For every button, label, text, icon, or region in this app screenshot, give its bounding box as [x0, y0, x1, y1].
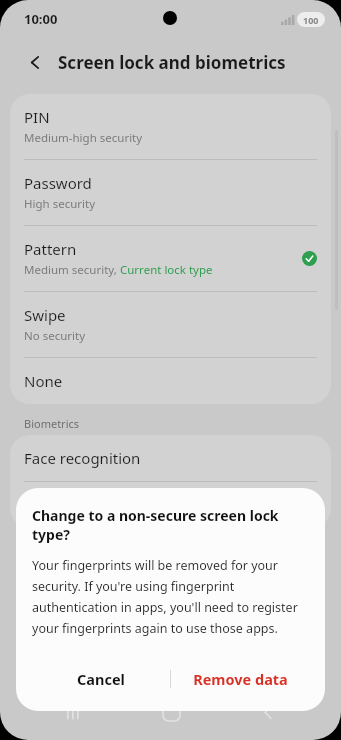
button[interactable]: Pattern [10, 226, 331, 291]
staticText: Fingerprints [24, 495, 110, 515]
staticText: Current lock type [120, 262, 213, 278]
staticText: 10:00 [24, 10, 58, 28]
button[interactable]: Password [10, 160, 331, 225]
button[interactable]: PIN [10, 94, 331, 159]
button[interactable]: Fingerprints [10, 482, 331, 528]
staticText: Your fingerprints will be removed for yo… [32, 557, 309, 637]
button[interactable]: Back [20, 47, 50, 77]
staticText: Remove data [193, 669, 288, 689]
staticText: Pattern [24, 239, 77, 259]
staticText: Biometrics [24, 416, 80, 431]
staticText: Medium-high security [24, 130, 143, 146]
staticText: Screen lock and biometrics [58, 51, 286, 74]
staticText: None [24, 371, 63, 391]
staticText: Change to a non-secure screen lock type? [32, 506, 309, 544]
button[interactable]: Face recognition [10, 435, 331, 481]
button[interactable]: None [10, 358, 331, 404]
staticText: High security [24, 196, 96, 212]
button[interactable]: Remove data [171, 657, 309, 701]
button[interactable]: Back [244, 688, 292, 736]
staticText: Cancel [77, 669, 125, 689]
button[interactable]: Swipe [10, 292, 331, 357]
button[interactable]: Cancel [32, 657, 170, 701]
staticText: Face recognition [24, 448, 141, 468]
other: Selected [302, 251, 317, 266]
button[interactable]: Recent apps [49, 688, 97, 736]
staticText: Swipe [24, 305, 66, 325]
staticText: No security [24, 328, 86, 344]
button[interactable]: Home [147, 688, 195, 736]
staticText: PIN [24, 107, 50, 127]
staticText: Password [24, 173, 92, 193]
staticText: Medium security, [24, 262, 120, 278]
staticText: 100 [303, 14, 319, 26]
